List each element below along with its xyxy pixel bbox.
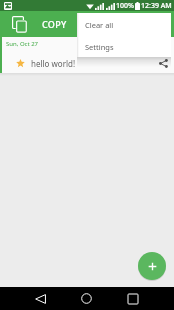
staticText: 100% bbox=[116, 1, 134, 11]
button[interactable]: Back bbox=[26, 287, 55, 310]
button[interactable]: Recents bbox=[118, 287, 147, 310]
button[interactable]: Copy bbox=[9, 14, 29, 34]
staticText: Settings bbox=[85, 42, 114, 52]
button[interactable]: Share bbox=[154, 54, 172, 72]
staticText: 12:39 AM bbox=[141, 1, 172, 11]
staticText: hello world! bbox=[31, 58, 76, 69]
button[interactable]: Settings bbox=[77, 36, 171, 57]
button[interactable]: Home bbox=[72, 287, 101, 310]
staticText: Sun, Oct 27 bbox=[6, 40, 39, 48]
staticText: Clear all bbox=[85, 20, 114, 30]
button[interactable]: Clear all bbox=[77, 14, 171, 36]
staticText: COPY bbox=[42, 18, 67, 30]
button[interactable]: hello world! bbox=[0, 50, 174, 73]
button[interactable]: Add bbox=[138, 252, 166, 280]
